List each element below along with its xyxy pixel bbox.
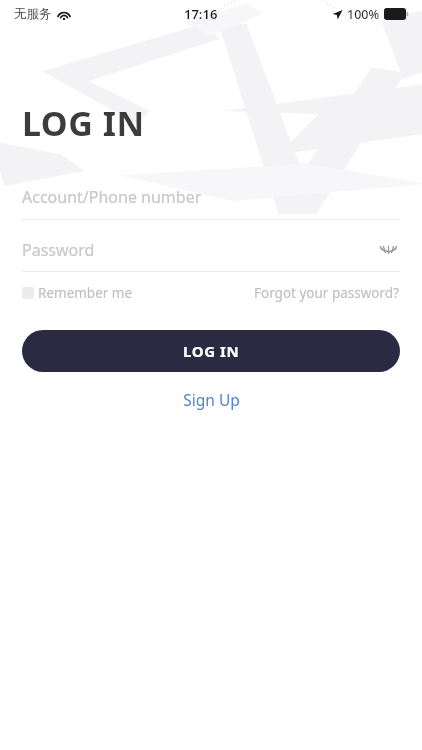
staticText: Forgot your password?	[254, 284, 400, 302]
staticText: LOG IN	[22, 100, 145, 146]
staticText: Account/Phone number	[22, 186, 202, 208]
button[interactable]: LOG IN	[22, 330, 400, 372]
staticText: 100%	[347, 6, 380, 23]
staticText: Remember me	[38, 284, 133, 302]
button[interactable]: Forgot your password?	[254, 284, 400, 302]
staticText: 无服务	[14, 6, 52, 22]
button[interactable]: Password	[22, 239, 376, 261]
staticText: Password	[22, 239, 95, 261]
staticText: 17:16	[184, 5, 218, 23]
staticText: LOG IN	[183, 341, 240, 361]
staticText: Sign Up	[183, 389, 240, 410]
button[interactable]: Show password	[376, 238, 400, 262]
button[interactable]: Remember me	[22, 284, 133, 302]
button[interactable]: Sign Up	[167, 386, 256, 413]
button[interactable]: Account/Phone number	[22, 186, 400, 220]
